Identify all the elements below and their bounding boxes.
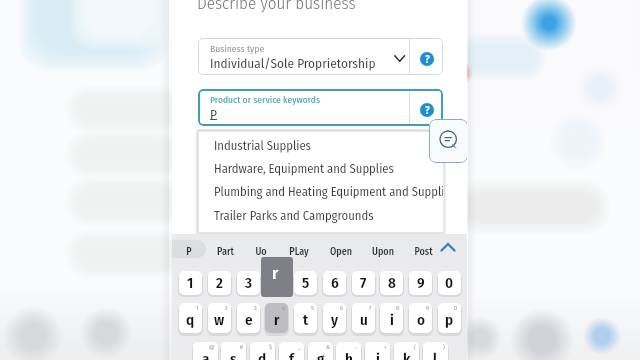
button[interactable]: 6	[323, 271, 346, 295]
button[interactable]: Hardware, Equipment and Supplies	[198, 160, 444, 183]
staticText: 5	[311, 304, 314, 311]
button[interactable]: Help	[420, 103, 434, 117]
staticText: Part	[217, 246, 234, 258]
staticText: Hardware, Equipment and Supplies	[214, 161, 394, 176]
button[interactable]: Business type	[198, 38, 443, 75]
staticText: 7	[369, 304, 372, 311]
staticText: P	[210, 107, 217, 123]
staticText: 6	[331, 274, 339, 292]
button[interactable]: 8	[380, 303, 403, 333]
staticText: Upon	[372, 246, 394, 258]
button[interactable]: 3	[237, 303, 260, 333]
button[interactable]: 9	[409, 303, 432, 333]
staticText: &	[326, 343, 330, 350]
button[interactable]: 9	[409, 271, 432, 295]
button[interactable]: )	[423, 342, 448, 360]
staticText: 2	[225, 304, 228, 311]
button[interactable]: Plumbing and Heating Equipment and Suppl…	[198, 183, 444, 206]
staticText: Individual/Sole Proprietorship	[210, 56, 376, 72]
staticText: a	[202, 350, 210, 360]
staticText: r	[272, 263, 279, 283]
button[interactable]: Help	[420, 52, 434, 66]
button[interactable]: 1	[179, 303, 202, 333]
staticText: 0	[454, 304, 458, 311]
button[interactable]: 2	[208, 271, 231, 295]
button[interactable]: 3	[237, 271, 260, 295]
button[interactable]: &	[308, 342, 333, 360]
button[interactable]: 4	[265, 271, 288, 295]
button[interactable]: -	[336, 342, 361, 360]
staticText: e	[245, 311, 253, 329]
button[interactable]: 0	[438, 303, 461, 333]
button[interactable]: #	[221, 342, 246, 360]
button[interactable]: (	[394, 342, 419, 360]
button[interactable]: Expand suggestions	[438, 238, 458, 258]
staticText: (	[414, 343, 416, 350]
button[interactable]: Trailer Parks and Campgrounds	[198, 207, 444, 230]
button[interactable]: _	[279, 342, 304, 360]
button[interactable]: Product or service keywords	[198, 89, 443, 126]
staticText: 4	[282, 304, 285, 311]
staticText: 1	[187, 274, 194, 292]
button[interactable]: Open	[319, 242, 363, 261]
staticText: 3	[254, 304, 257, 311]
staticText: 2	[216, 274, 223, 292]
button[interactable]: 5	[294, 271, 317, 295]
button[interactable]: P	[172, 242, 211, 261]
staticText: k	[403, 350, 411, 360]
staticText: @	[209, 343, 215, 350]
button[interactable]: $	[250, 342, 275, 360]
staticText: 4	[273, 274, 281, 292]
button[interactable]: 2	[208, 303, 231, 333]
button[interactable]: 4	[265, 303, 288, 333]
staticText: s	[230, 350, 237, 360]
button[interactable]: Part	[203, 242, 247, 261]
staticText: Plumbing and Heating Equipment and Suppl…	[214, 184, 445, 199]
staticText: d	[258, 350, 267, 360]
button[interactable]: Uo	[239, 242, 283, 261]
staticText: i	[390, 311, 394, 329]
button[interactable]	[172, 240, 206, 258]
button[interactable]: Industrial Supplies	[198, 137, 444, 160]
staticText: )	[443, 343, 445, 350]
staticText: l	[433, 350, 438, 360]
staticText: o	[417, 311, 425, 329]
button[interactable]: +	[365, 342, 390, 360]
staticText: Open	[330, 246, 352, 258]
staticText: 1	[196, 304, 199, 311]
staticText: u	[360, 311, 368, 329]
staticText: ?	[425, 53, 430, 66]
staticText: Uo	[255, 246, 267, 258]
button[interactable]: 6	[323, 303, 346, 333]
staticText: 5	[302, 274, 310, 292]
staticText: f	[289, 350, 294, 360]
staticText: 6	[340, 304, 343, 311]
staticText: Industrial Supplies	[214, 138, 311, 153]
button[interactable]: Post	[401, 242, 445, 261]
button[interactable]: 8	[380, 271, 403, 295]
staticText: +	[384, 343, 387, 350]
staticText: w	[214, 311, 225, 329]
button[interactable]: Upon	[361, 242, 405, 261]
staticText: Business type	[210, 43, 265, 55]
button[interactable]: 5	[294, 303, 317, 333]
staticText: Describe your business	[197, 0, 356, 13]
button[interactable]: 0	[438, 271, 461, 295]
button[interactable]: Chat support	[429, 119, 467, 163]
staticText: P	[186, 246, 192, 258]
staticText: p	[445, 311, 454, 329]
button[interactable]: 1	[179, 271, 202, 295]
staticText: r	[274, 311, 280, 329]
staticText: g	[317, 350, 325, 360]
staticText: q	[186, 311, 195, 329]
staticText: 9	[426, 304, 429, 311]
button[interactable]: @	[193, 342, 218, 360]
button[interactable]: 7	[352, 303, 375, 333]
staticText: j	[376, 350, 380, 360]
staticText: y	[331, 311, 339, 329]
button[interactable]: PLay	[277, 242, 321, 261]
staticText: _	[298, 343, 301, 350]
button[interactable]: 7	[352, 271, 375, 295]
staticText: 3	[245, 274, 253, 292]
staticText: ?	[425, 104, 430, 117]
